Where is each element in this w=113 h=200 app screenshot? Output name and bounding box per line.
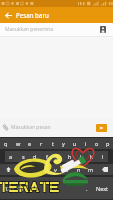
staticText: j bbox=[80, 153, 82, 160]
staticText: y bbox=[62, 140, 65, 147]
staticText: Masukkan pesan bbox=[11, 124, 51, 131]
staticText: t bbox=[52, 140, 54, 147]
button[interactable]: Next bbox=[92, 177, 113, 199]
staticText: f bbox=[46, 153, 48, 160]
staticText: k bbox=[90, 153, 93, 160]
staticText: b bbox=[65, 166, 69, 173]
button[interactable]: c bbox=[38, 164, 49, 175]
staticText: n bbox=[77, 166, 81, 173]
button[interactable]: h bbox=[64, 151, 75, 162]
button[interactable]: Space bbox=[26, 177, 81, 199]
button[interactable]: z bbox=[16, 164, 27, 175]
button[interactable]: e bbox=[24, 138, 36, 149]
staticText: . bbox=[86, 185, 88, 192]
button[interactable]: ?123 bbox=[0, 177, 15, 199]
button[interactable]: . bbox=[81, 177, 92, 199]
staticText: r bbox=[40, 140, 43, 147]
button[interactable]: Back bbox=[0, 7, 16, 23]
button[interactable]: i bbox=[80, 138, 91, 149]
button[interactable]: Emoji bbox=[15, 177, 26, 199]
staticText: s bbox=[22, 153, 25, 160]
button[interactable]: l bbox=[97, 151, 108, 162]
staticText: q bbox=[4, 140, 8, 147]
button[interactable]: x bbox=[27, 164, 38, 175]
button[interactable]: Shift bbox=[0, 164, 16, 175]
staticText: Next bbox=[96, 185, 109, 192]
staticText: x bbox=[31, 166, 34, 173]
staticText: u bbox=[73, 140, 77, 147]
staticText: a bbox=[9, 153, 13, 160]
button[interactable]: a bbox=[5, 151, 17, 162]
button[interactable]: v bbox=[49, 164, 61, 175]
button[interactable]: o bbox=[91, 138, 102, 149]
button[interactable]: q bbox=[0, 138, 12, 149]
button[interactable]: y bbox=[58, 138, 69, 149]
staticText: w bbox=[16, 140, 21, 147]
button[interactable]: k bbox=[86, 151, 97, 162]
button[interactable]: b bbox=[61, 164, 73, 175]
button[interactable]: r bbox=[36, 138, 47, 149]
staticText: h bbox=[68, 153, 72, 160]
button[interactable]: s bbox=[17, 151, 29, 162]
button[interactable]: Backspace bbox=[97, 164, 113, 175]
button[interactable]: t bbox=[47, 138, 58, 149]
button[interactable]: Send bbox=[96, 124, 107, 132]
staticText: e bbox=[28, 140, 32, 147]
button[interactable]: m bbox=[85, 164, 97, 175]
button[interactable]: d bbox=[29, 151, 41, 162]
button[interactable]: w bbox=[12, 138, 24, 149]
button[interactable]: f bbox=[41, 151, 53, 162]
button[interactable]: Choose contact bbox=[97, 23, 109, 36]
staticText: i bbox=[85, 140, 87, 147]
staticText: g bbox=[57, 153, 61, 160]
staticText: Masukkan penerima bbox=[5, 26, 54, 33]
staticText: v bbox=[54, 166, 57, 173]
button[interactable]: n bbox=[73, 164, 85, 175]
button[interactable]: u bbox=[69, 138, 80, 149]
button[interactable]: Attach file bbox=[0, 118, 11, 137]
staticText: z bbox=[20, 166, 23, 173]
staticText: c bbox=[42, 166, 45, 173]
button[interactable]: j bbox=[75, 151, 86, 162]
staticText: p bbox=[106, 140, 110, 147]
button[interactable]: g bbox=[53, 151, 64, 162]
staticText: o bbox=[95, 140, 99, 147]
staticText: d bbox=[33, 153, 37, 160]
staticText: l bbox=[102, 153, 104, 160]
staticText: m bbox=[88, 166, 94, 173]
button[interactable]: p bbox=[102, 138, 113, 149]
staticText: ?123 bbox=[2, 185, 14, 192]
staticText: Pesan baru bbox=[16, 11, 49, 19]
